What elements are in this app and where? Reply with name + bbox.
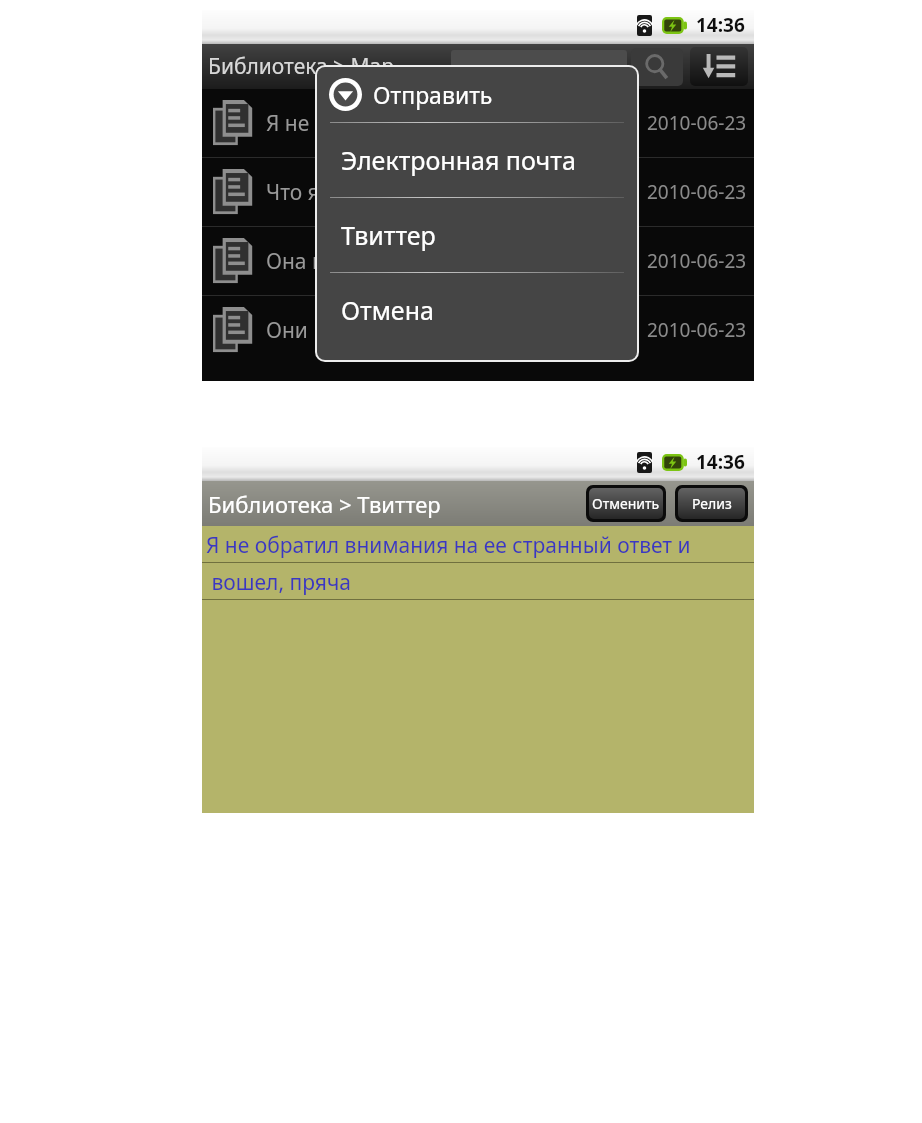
staticText: Они как ра... [266,316,647,345]
staticText: 14:36 [696,449,745,475]
staticText: Релиз [692,494,732,513]
staticText: Отмена [341,293,434,327]
staticText: Она не по... [266,247,647,276]
staticText: Что я поду... [266,178,647,207]
button[interactable]: Отмена [317,273,637,347]
button[interactable]: Она не по... [202,227,754,295]
button[interactable]: Отменить [589,488,663,519]
button[interactable]: Релиз [678,488,745,519]
button[interactable]: Электронная почта [317,123,637,197]
staticText: 14:36 [696,12,745,38]
button[interactable]: Sort [690,47,748,86]
button[interactable]: Search [631,48,683,86]
staticText: Я не обрат... [266,109,647,138]
staticText: вошел, пряча [206,568,351,597]
staticText: 2010-06-23 [647,317,747,343]
staticText: 2010-06-23 [647,110,747,136]
button[interactable]: Search field [451,50,627,83]
button[interactable]: Что я поду... [202,158,754,226]
button[interactable]: Они как ра... [202,296,754,364]
button[interactable]: Твиттер [317,198,637,272]
staticText: 2010-06-23 [647,179,747,205]
staticText: Я не обратил внимания на ее странный отв… [206,531,691,560]
staticText: Электронная почта [341,143,576,177]
staticText: Отменить [592,494,660,513]
button[interactable]: Отправить [329,67,637,122]
staticText: Отправить [373,79,493,110]
staticText: Твиттер [341,218,436,252]
staticText: Библиотека > Твиттер [208,489,441,519]
staticText: Библиотека > Мар... [208,52,411,81]
button[interactable]: Я не обрат... [202,89,754,157]
staticText: 2010-06-23 [647,248,747,274]
